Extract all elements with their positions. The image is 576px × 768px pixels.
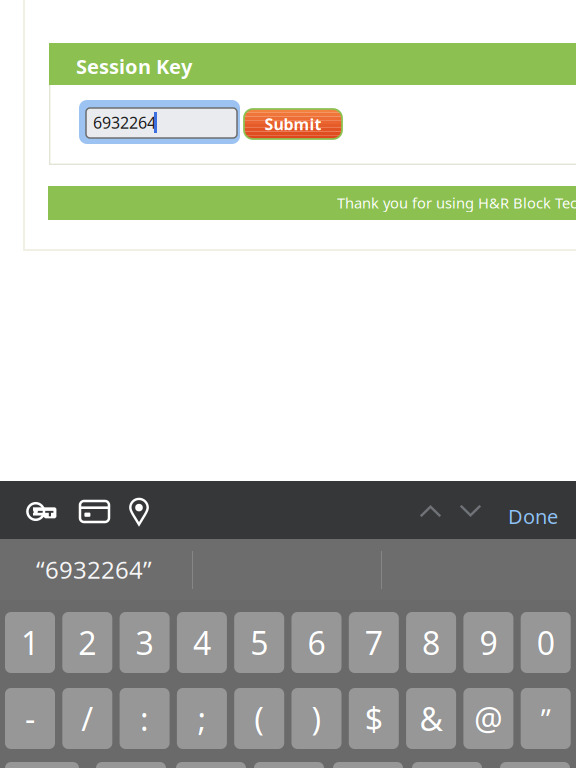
button[interactable]: : (120, 688, 170, 749)
button[interactable]: ' (412, 762, 482, 768)
button[interactable]: $ (349, 688, 399, 749)
button[interactable]: ? (254, 762, 324, 768)
staticText: $ (365, 697, 383, 740)
staticText: 4 (193, 621, 211, 664)
button[interactable]: , (176, 762, 246, 768)
button[interactable]: ) (291, 688, 341, 749)
staticText: “6932264” (36, 554, 152, 585)
staticText: 0 (537, 621, 555, 664)
staticText: ; (197, 697, 206, 740)
button[interactable]: ⌫ (500, 762, 570, 768)
button[interactable]: 5 (234, 612, 284, 673)
button[interactable]: . (96, 762, 166, 768)
staticText: Submit (264, 113, 321, 135)
staticText: 6 (307, 621, 325, 664)
button[interactable]: 3 (120, 612, 170, 673)
button[interactable]: Previous Field (419, 503, 442, 519)
staticText: 7 (365, 621, 383, 664)
button[interactable]: 7 (349, 612, 399, 673)
staticText: 1 (21, 621, 39, 664)
button[interactable]: Scan Credit Card (80, 501, 109, 522)
button[interactable]: 4 (177, 612, 227, 673)
button[interactable]: Insert Location (129, 497, 149, 526)
staticText: Session Key (76, 53, 192, 72)
button[interactable]: ” (521, 688, 571, 749)
staticText: - (25, 697, 35, 740)
staticText: ) (311, 697, 321, 740)
staticText: & (420, 697, 443, 740)
button[interactable]: Done (508, 503, 568, 520)
button[interactable]: ( (234, 688, 284, 749)
staticText: / (81, 697, 93, 740)
staticText: 8 (422, 621, 440, 664)
button[interactable]: 8 (406, 612, 456, 673)
staticText: 9 (479, 621, 497, 664)
button[interactable]: ; (177, 688, 227, 749)
staticText: Done (508, 503, 558, 520)
button[interactable]: 2 (62, 612, 112, 673)
button[interactable]: “6932264” (0, 539, 192, 600)
button[interactable]: @ (463, 688, 513, 749)
button[interactable]: 9 (463, 612, 513, 673)
staticText: 6932264 (93, 112, 156, 126)
button[interactable]: 0 (521, 612, 571, 673)
staticText: 5 (250, 621, 268, 664)
staticText: Thank you for using H&R Block Technology (337, 193, 576, 209)
button[interactable]: ! (333, 762, 403, 768)
staticText: 2 (78, 621, 96, 664)
button[interactable]: / (62, 688, 112, 749)
button[interactable]: Next Field (459, 503, 482, 519)
button[interactable]: Submit (244, 109, 342, 139)
staticText: ( (254, 697, 264, 740)
staticText: ” (541, 700, 551, 737)
staticText: @ (474, 697, 503, 740)
button[interactable]: Passwords (26, 498, 60, 522)
button[interactable]: #+= (5, 762, 79, 768)
staticText: : (140, 697, 149, 740)
button[interactable]: - (5, 688, 55, 749)
button[interactable]: & (406, 688, 456, 749)
button[interactable]: 6 (291, 612, 341, 673)
staticText: 3 (136, 621, 154, 664)
button[interactable]: 1 (5, 612, 55, 673)
